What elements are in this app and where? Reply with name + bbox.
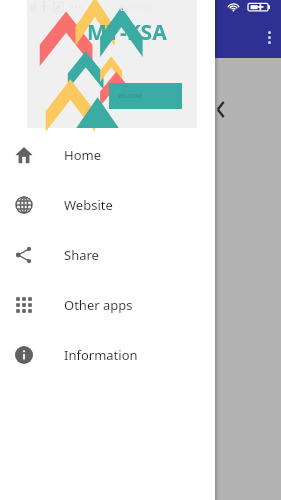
- button[interactable]: Home: [0, 130, 215, 180]
- staticText: MY-KSA: [87, 18, 167, 47]
- button[interactable]: Information: [0, 330, 215, 380]
- staticText: WELCOME: [118, 93, 143, 100]
- button[interactable]: Share: [0, 230, 215, 280]
- staticText: Other apps: [64, 296, 133, 314]
- staticText: Information: [64, 346, 138, 364]
- staticText: Website: [64, 196, 113, 214]
- staticText: Share: [64, 246, 99, 264]
- button[interactable]: Other apps: [0, 280, 215, 330]
- button[interactable]: More options: [258, 26, 280, 48]
- staticText: 6:47 PM: [120, 2, 151, 13]
- button[interactable]: Website: [0, 180, 215, 230]
- staticText: Home: [64, 146, 101, 164]
